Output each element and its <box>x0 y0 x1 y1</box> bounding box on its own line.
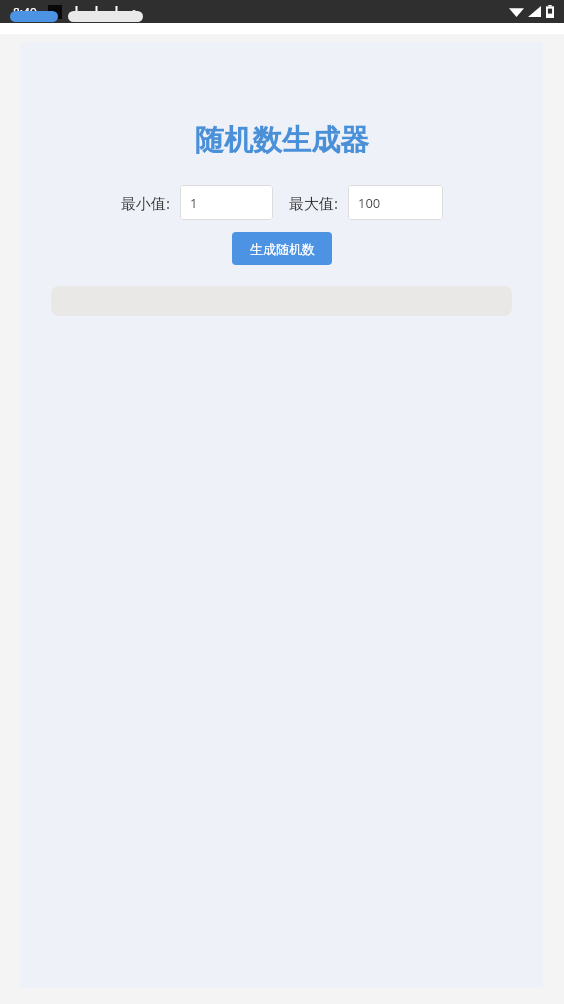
staticText: 最大值: <box>289 193 339 213</box>
button[interactable]: 1 <box>180 185 273 220</box>
button[interactable]: 选项卡一 <box>10 11 58 22</box>
staticText: 最小值: <box>121 193 171 213</box>
staticText: 8:49 <box>13 4 37 20</box>
staticText: 随机数生成器 <box>195 122 369 159</box>
staticText: 100 <box>358 194 381 212</box>
button[interactable]: 生成随机数 <box>232 232 332 265</box>
staticText: 生成随机数 <box>250 241 315 257</box>
button[interactable]: 100 <box>348 185 443 220</box>
staticText: 1 <box>190 194 198 212</box>
button[interactable]: 选项卡二 <box>68 11 143 22</box>
